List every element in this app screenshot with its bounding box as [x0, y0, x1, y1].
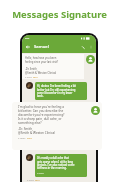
button[interactable]: More options: [89, 45, 93, 49]
staticText: sent: [27, 136, 32, 139]
staticText: -Dr. Smith, @Smith & Weston Clinical: [18, 127, 56, 135]
staticText: Messages Signature: [0, 8, 119, 21]
staticText: 4:05: [25, 37, 30, 40]
staticText: Samuel: [34, 44, 49, 50]
button[interactable]: Call: [81, 45, 86, 50]
staticText: 3 mins: [37, 172, 44, 175]
staticText: Hello, how have you been feeling since y…: [25, 56, 59, 64]
staticText: sent: [33, 76, 38, 79]
button[interactable]: Back: [25, 44, 31, 50]
staticText: 2 mins: [18, 136, 27, 139]
staticText: I'm glad to hear you're feeling a bit be…: [18, 105, 65, 125]
staticText: 2 mins: [27, 179, 35, 182]
staticText: 2 mins: [25, 76, 33, 79]
staticText: sent: [35, 179, 40, 182]
staticText: -Dr. Smith, @Smith & Weston Clinical: [25, 67, 57, 75]
staticText: It's mostly a dull ache that gets worse …: [37, 156, 75, 170]
staticText: Hi, doctor. I've been feeling a bit bett…: [37, 84, 76, 98]
